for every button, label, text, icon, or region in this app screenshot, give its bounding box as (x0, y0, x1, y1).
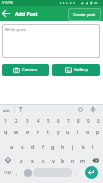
button[interactable]: j (68, 140, 78, 152)
staticText: b (61, 157, 65, 164)
button[interactable]: p (93, 125, 103, 137)
staticText: n (71, 157, 75, 164)
button[interactable] (0, 8, 12, 19)
button[interactable] (24, 169, 32, 177)
staticText: d (31, 143, 35, 150)
button[interactable]: y (53, 125, 63, 137)
button[interactable]: 5 (43, 115, 53, 126)
button[interactable]: 8 (73, 115, 83, 126)
button[interactable]: i (73, 125, 83, 137)
staticText: m (80, 157, 86, 164)
button[interactable]: v (48, 154, 58, 166)
staticText: ?123 (4, 170, 12, 175)
staticText: 8 (77, 118, 80, 124)
button[interactable]: t (43, 125, 53, 137)
button[interactable]: 3 (22, 115, 33, 126)
button[interactable]: q (0, 125, 11, 137)
staticText: p (96, 128, 100, 135)
button[interactable]: 7 (63, 115, 73, 126)
staticText: Gallery (74, 67, 88, 73)
staticText: 1 (4, 118, 7, 124)
button[interactable]: l (88, 140, 98, 152)
staticText: e (26, 128, 30, 135)
button[interactable] (33, 168, 72, 177)
button[interactable]: s (17, 140, 28, 152)
button[interactable]: Camera (2, 64, 49, 76)
button[interactable]: 2 (11, 115, 22, 126)
staticText: 0 (97, 118, 100, 124)
button[interactable]: b (58, 154, 68, 166)
button[interactable]: Create post (68, 8, 101, 21)
staticText: 6 (57, 118, 60, 124)
button[interactable]: w (11, 125, 22, 137)
staticText: y (57, 128, 60, 135)
staticText: z (20, 157, 23, 164)
button[interactable]: 9 (83, 115, 93, 126)
staticText: 5:16 PM (2, 1, 13, 5)
button[interactable]: Write post... (2, 24, 100, 58)
staticText: 2 (15, 118, 18, 124)
button[interactable] (0, 154, 16, 166)
staticText: a (10, 143, 14, 150)
button[interactable]: e (22, 125, 33, 137)
staticText: u (66, 128, 70, 135)
button[interactable]: d (28, 140, 38, 152)
button[interactable]: c (38, 154, 48, 166)
button[interactable]: z (16, 154, 27, 166)
button[interactable]: n (68, 154, 78, 166)
staticText: 3 (26, 118, 29, 124)
staticText: q (4, 128, 8, 135)
staticText: l (92, 143, 94, 150)
staticText: t (47, 128, 49, 135)
button[interactable]: x (27, 154, 38, 166)
staticText: i (77, 128, 79, 135)
staticText: w (14, 128, 19, 135)
staticText: Create post (73, 12, 96, 18)
staticText: 4 (37, 118, 40, 124)
button[interactable] (88, 154, 103, 166)
button[interactable]: u (63, 125, 73, 137)
staticText: r (37, 128, 40, 135)
staticText: s (21, 143, 24, 150)
button[interactable]: o (83, 125, 93, 137)
button[interactable]: 6 (53, 115, 63, 126)
button[interactable]: Gallery (52, 64, 100, 76)
button[interactable] (85, 166, 98, 179)
staticText: c (42, 157, 45, 164)
button[interactable]: , (13, 164, 21, 181)
staticText: , (16, 170, 18, 176)
button[interactable]: a (6, 140, 17, 152)
button[interactable]: 4 (33, 115, 43, 126)
button[interactable]: r (33, 125, 43, 137)
staticText: h (61, 143, 65, 150)
staticText: v (52, 157, 55, 164)
button[interactable]: g (48, 140, 58, 152)
staticText: j (72, 143, 74, 150)
button[interactable]: h (58, 140, 68, 152)
button[interactable]: 0 (93, 115, 103, 126)
staticText: f (42, 143, 44, 150)
button[interactable]: 1 (0, 115, 11, 126)
staticText: g (51, 143, 55, 150)
staticText: Camera (22, 67, 38, 73)
staticText: 5 (47, 118, 50, 124)
staticText: 9 (87, 118, 90, 124)
button[interactable]: ?123 (1, 164, 15, 181)
staticText: abc (3, 107, 11, 113)
staticText: k (82, 143, 85, 150)
staticText: o (86, 128, 90, 135)
button[interactable]: f (38, 140, 48, 152)
button[interactable]: m (78, 154, 88, 166)
staticText: x (31, 157, 34, 164)
staticText: Add Post (15, 10, 38, 17)
button[interactable]: . (73, 164, 81, 181)
staticText: . (76, 170, 78, 176)
staticText: 7 (67, 118, 70, 124)
button[interactable]: k (78, 140, 88, 152)
staticText: Write post... (5, 27, 29, 33)
